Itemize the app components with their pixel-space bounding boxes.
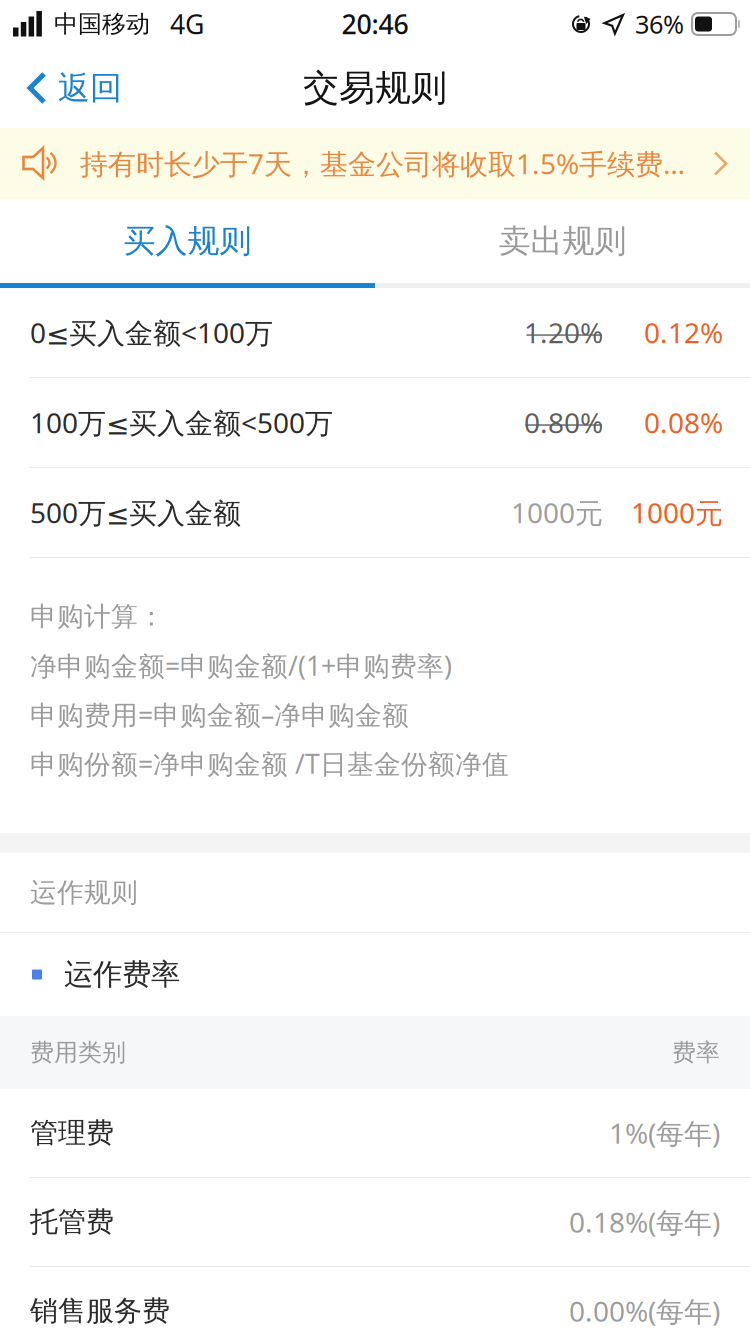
staticText: 1000元 [631,494,723,531]
staticText: 申购份额=净申购金额 /T日基金份额净值 [30,746,509,781]
staticText: 中国移动 [54,9,150,39]
staticText: 申购费用=申购金额–净申购金额 [30,697,409,732]
button[interactable]: 返回 [0,48,138,128]
staticText: 1000元 [511,494,603,531]
staticText: 0≤买入金额<100万 [30,314,273,351]
staticText: 销售服务费 [30,1294,170,1328]
button[interactable]: 卖出规则 [375,199,750,283]
staticText: 交易规则 [303,66,447,110]
staticText: 4G [170,6,204,42]
staticText: 20:46 [341,6,408,42]
staticText: 费率 [672,1038,720,1067]
staticText: 36% [635,7,684,41]
staticText: 费用类别 [30,1038,126,1067]
staticText: 持有时长少于7天，基金公司将收取1.5%手续费… [80,145,685,182]
staticText: 0.12% [644,314,723,351]
staticText: 运作费率 [64,956,180,992]
staticText: 0.80% [524,404,603,441]
button[interactable]: 持有时长少于7天，基金公司将收取1.5%手续费… [0,128,750,199]
staticText: 0.00%(每年) [569,1292,720,1330]
staticText: 申购计算： [30,600,165,633]
staticText: 返回 [58,68,122,108]
staticText: 运作规则 [30,876,138,909]
staticText: 托管费 [30,1205,114,1239]
staticText: 净申购金额=申购金额/(1+申购费率) [30,648,452,683]
staticText: 1.20% [524,314,603,351]
staticText: 管理费 [30,1116,114,1150]
staticText: 买入规则 [123,221,251,261]
staticText: 500万≤买入金额 [30,494,241,531]
staticText: 1%(每年) [609,1114,720,1152]
staticText: 100万≤买入金额<500万 [30,404,333,441]
staticText: 0.18%(每年) [569,1203,720,1241]
button[interactable]: 买入规则 [0,199,375,283]
staticText: 0.08% [644,404,723,441]
staticText: 卖出规则 [498,221,626,261]
